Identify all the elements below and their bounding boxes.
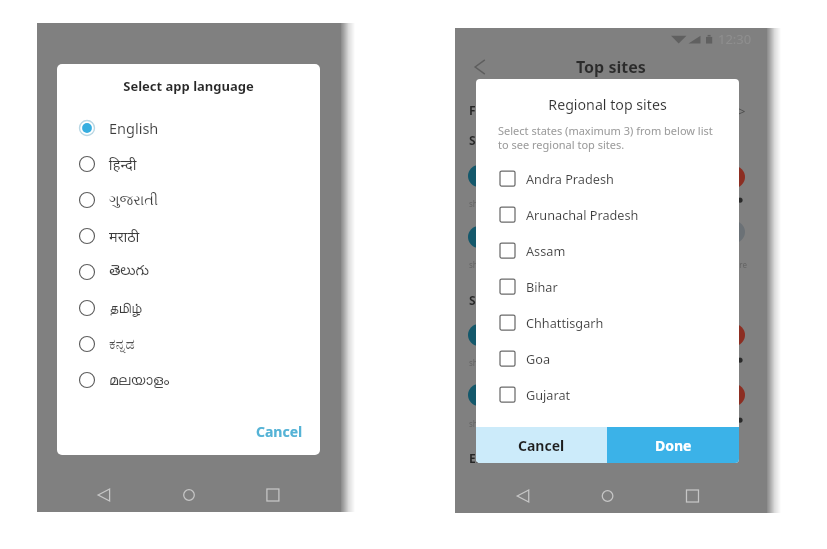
staticText: Regional top sites <box>476 95 739 114</box>
button[interactable]: English <box>57 110 320 146</box>
staticText: Entertainment <box>469 450 557 466</box>
button[interactable]: Andra Pradesh <box>476 160 739 196</box>
staticText: Cancel <box>518 436 565 455</box>
button[interactable]: Cancel <box>476 427 607 463</box>
button[interactable]: System navigation <box>37 475 341 512</box>
staticText: मराठी <box>109 226 140 246</box>
staticText: Shopping <box>469 132 526 148</box>
button[interactable]: Cancel <box>246 412 320 455</box>
staticText: Assam <box>526 242 566 259</box>
button[interactable]: Chhattisgarh <box>476 304 739 340</box>
button[interactable]: मराठी <box>57 218 320 254</box>
staticText: English <box>109 118 159 138</box>
staticText: ● <box>737 196 744 204</box>
button[interactable]: Assam <box>476 232 739 268</box>
staticText: Cancel <box>256 422 303 441</box>
staticText: more <box>727 259 747 270</box>
button[interactable]: Goa <box>476 340 739 376</box>
staticText: हिन्दी <box>109 154 137 174</box>
staticText: Top sites <box>576 56 646 78</box>
button[interactable]: Arunachal Pradesh <box>476 196 739 232</box>
button[interactable]: Back <box>469 56 491 78</box>
button[interactable]: മലയാളം <box>57 362 320 398</box>
button[interactable]: System navigation <box>455 476 767 513</box>
button[interactable]: Bihar <box>476 268 739 304</box>
staticText: Done <box>655 436 692 455</box>
staticText: മലയാളം <box>109 373 170 388</box>
staticText: Chhattisgarh <box>526 314 604 331</box>
staticText: > <box>738 102 746 120</box>
staticText: ગુજરાતી <box>109 193 159 208</box>
staticText: 12:30 <box>718 30 752 48</box>
staticText: ● <box>737 356 744 364</box>
staticText: shopping site <box>469 198 520 209</box>
staticText: Bihar <box>526 278 558 295</box>
staticText: Goa <box>526 350 551 367</box>
staticText: தமிழ் <box>109 301 142 316</box>
staticText: Select app language <box>57 77 320 95</box>
staticText: Andra Pradesh <box>526 170 614 187</box>
staticText: Social <box>469 292 504 308</box>
staticText: ● <box>737 416 744 424</box>
staticText: shopping site <box>469 418 520 429</box>
staticText: Arunachal Pradesh <box>526 206 639 223</box>
staticText: shopping site <box>469 357 520 368</box>
staticText: shopping site <box>469 259 520 270</box>
button[interactable]: ગુજરાતી <box>57 182 320 218</box>
staticText: తెలుగు <box>109 262 150 282</box>
button[interactable]: Done <box>607 427 739 463</box>
staticText: Select states (maximum 3) from below lis… <box>498 123 713 152</box>
staticText: Gujarat <box>526 386 571 403</box>
button[interactable]: Gujarat <box>476 376 739 412</box>
button[interactable]: ಕನ್ನಡ <box>57 326 320 362</box>
button[interactable]: తెలుగు <box>57 254 320 290</box>
staticText: ಕನ್ನಡ <box>109 337 135 352</box>
button[interactable]: தமிழ் <box>57 290 320 326</box>
button[interactable]: हिन्दी <box>57 146 320 182</box>
staticText: Favourites <box>469 102 533 118</box>
